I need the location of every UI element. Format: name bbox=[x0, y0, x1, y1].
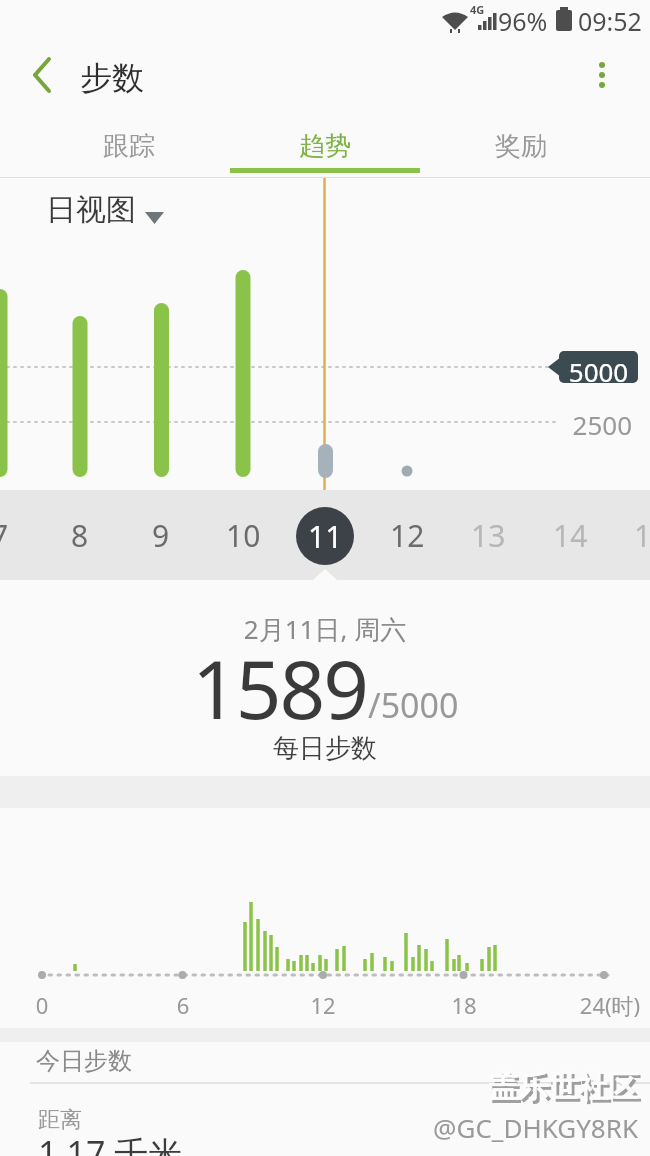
staticText: 4G bbox=[470, 2, 485, 17]
staticText: 5000 bbox=[559, 354, 638, 389]
staticText: 2500 bbox=[566, 407, 632, 442]
button[interactable]: 15 bbox=[611, 490, 650, 580]
staticText: 1589 bbox=[192, 633, 368, 742]
staticText: 日视图 bbox=[46, 191, 136, 229]
staticText: 12 bbox=[293, 990, 353, 1020]
button[interactable]: 奖励 bbox=[423, 118, 619, 174]
staticText: 2月11日, 周六 bbox=[0, 611, 650, 647]
button[interactable]: 7 bbox=[0, 490, 40, 580]
staticText: 7 bbox=[0, 515, 9, 556]
staticText: 15 bbox=[634, 515, 650, 556]
staticText: 距离 bbox=[38, 1106, 82, 1134]
staticText: 6 bbox=[153, 990, 213, 1020]
staticText: 18 bbox=[434, 990, 494, 1020]
button[interactable]: 9 bbox=[121, 490, 201, 580]
staticText: 0 bbox=[12, 990, 72, 1020]
button[interactable]: 11 bbox=[296, 507, 354, 565]
staticText: 盖乐世社区 bbox=[341, 1071, 641, 1109]
staticText: 1.17 千米 bbox=[38, 1130, 183, 1156]
staticText: 奖励 bbox=[495, 130, 547, 163]
staticText: 趋势 bbox=[299, 130, 351, 163]
button[interactable]: 日视图 bbox=[30, 188, 180, 234]
staticText: 11 bbox=[308, 516, 343, 557]
button[interactable]: 14 bbox=[530, 490, 610, 580]
staticText: 14 bbox=[553, 515, 588, 556]
staticText: 盖乐世社区 bbox=[338, 1068, 638, 1106]
button[interactable]: 趋势 bbox=[227, 118, 423, 174]
staticText: 09:52 bbox=[578, 4, 642, 38]
staticText: 8 bbox=[71, 515, 89, 556]
staticText: /5000 bbox=[368, 682, 459, 728]
staticText: 跟踪 bbox=[103, 130, 155, 163]
staticText: 13 bbox=[471, 515, 506, 556]
staticText: 10 bbox=[226, 515, 261, 556]
staticText: @GC_DHKGY8RK bbox=[338, 1110, 638, 1145]
button[interactable]: 10 bbox=[203, 490, 283, 580]
staticText: 96% bbox=[498, 4, 548, 38]
button[interactable]: 跟踪 bbox=[31, 118, 227, 174]
staticText: 24(时) bbox=[570, 990, 650, 1020]
staticText: 12 bbox=[390, 515, 425, 556]
staticText: 今日步数 bbox=[36, 1046, 132, 1076]
button[interactable]: 8 bbox=[40, 490, 120, 580]
button[interactable] bbox=[572, 40, 630, 98]
button[interactable]: 12 bbox=[367, 490, 447, 580]
staticText: 9 bbox=[152, 515, 170, 556]
staticText: 每日步数 bbox=[0, 732, 650, 765]
button[interactable]: 13 bbox=[448, 490, 528, 580]
button[interactable] bbox=[14, 48, 70, 104]
staticText: 步数 bbox=[80, 58, 144, 98]
